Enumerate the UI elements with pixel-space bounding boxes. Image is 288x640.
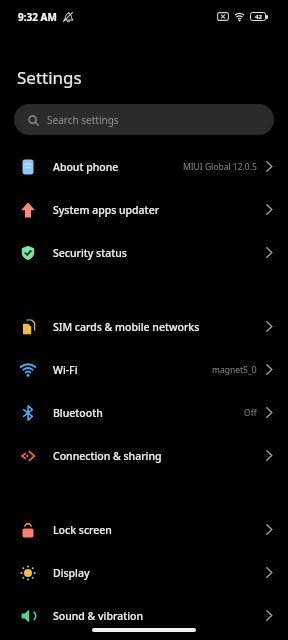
staticText: Bluetooth <box>53 406 103 420</box>
button[interactable]: Lock screen <box>0 508 288 551</box>
button[interactable]: Wi-Fi <box>0 348 288 391</box>
staticText: System apps updater <box>53 203 160 217</box>
button[interactable]: Display <box>0 551 288 594</box>
staticText: About phone <box>53 160 119 174</box>
staticText: Connection & sharing <box>53 449 162 463</box>
button[interactable]: SIM cards & mobile networks <box>0 305 288 348</box>
staticText: magnet5_0 <box>212 364 257 376</box>
staticText: Display <box>53 566 90 580</box>
button[interactable]: Security status <box>0 231 288 274</box>
staticText: Wi-Fi <box>53 363 78 377</box>
staticText: 9:32 AM <box>18 10 57 24</box>
button[interactable]: About phone <box>0 145 288 188</box>
button[interactable]: Sound & vibration <box>0 594 288 637</box>
staticText: Sound & vibration <box>53 609 144 623</box>
button[interactable]: Connection & sharing <box>0 434 288 477</box>
button[interactable]: System apps updater <box>0 188 288 231</box>
staticText: Lock screen <box>53 523 112 537</box>
staticText: Security status <box>53 246 127 260</box>
staticText: Search settings <box>47 113 119 127</box>
staticText: SIM cards & mobile networks <box>53 320 200 334</box>
staticText: Off <box>244 407 257 419</box>
staticText: Settings <box>17 66 82 89</box>
button[interactable]: Bluetooth <box>0 391 288 434</box>
staticText: MIUI Global 12.0.5 <box>183 161 257 173</box>
button[interactable]: Search settings <box>14 104 274 135</box>
staticText: 42 <box>255 13 262 21</box>
